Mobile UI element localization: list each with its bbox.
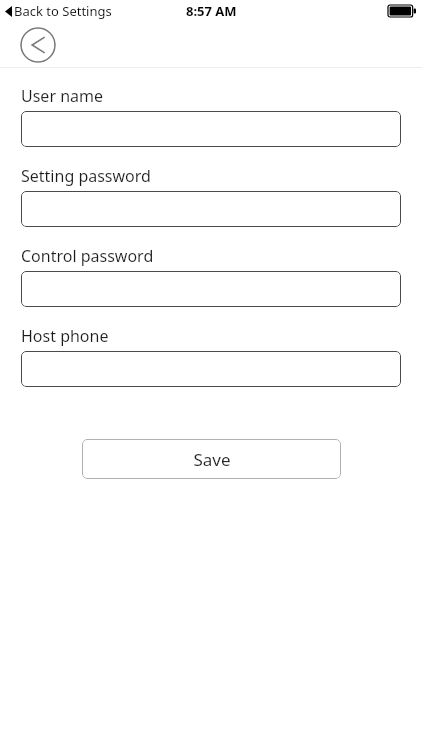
staticText: Save	[193, 448, 231, 471]
button[interactable]	[21, 111, 401, 147]
button[interactable]: Save	[82, 439, 341, 479]
staticText: 8:57 AM	[186, 2, 237, 20]
staticText: Back to Settings	[14, 2, 112, 20]
button[interactable]: Back	[20, 27, 56, 63]
button[interactable]	[21, 191, 401, 227]
button[interactable]: Back to Settings	[5, 2, 112, 20]
staticText: User name	[21, 85, 104, 107]
button[interactable]	[21, 351, 401, 387]
staticText: Host phone	[21, 325, 109, 347]
staticText: Control password	[21, 245, 154, 267]
staticText: Setting password	[21, 165, 151, 187]
button[interactable]	[21, 271, 401, 307]
